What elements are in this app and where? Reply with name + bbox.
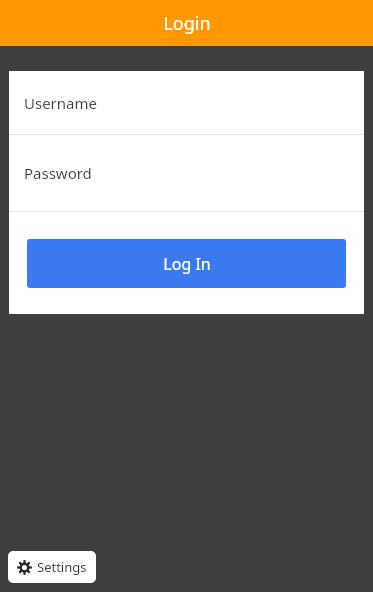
other: Settings [17,560,32,575]
button[interactable]: Username [9,71,364,134]
button[interactable]: Log In [27,239,346,288]
button[interactable]: Password [9,135,364,211]
staticText: Settings [37,558,87,576]
staticText: Username [24,93,97,113]
staticText: Password [24,163,92,183]
staticText: Log In [163,253,211,275]
button[interactable]: Settings [8,551,96,583]
staticText: Login [163,11,211,36]
